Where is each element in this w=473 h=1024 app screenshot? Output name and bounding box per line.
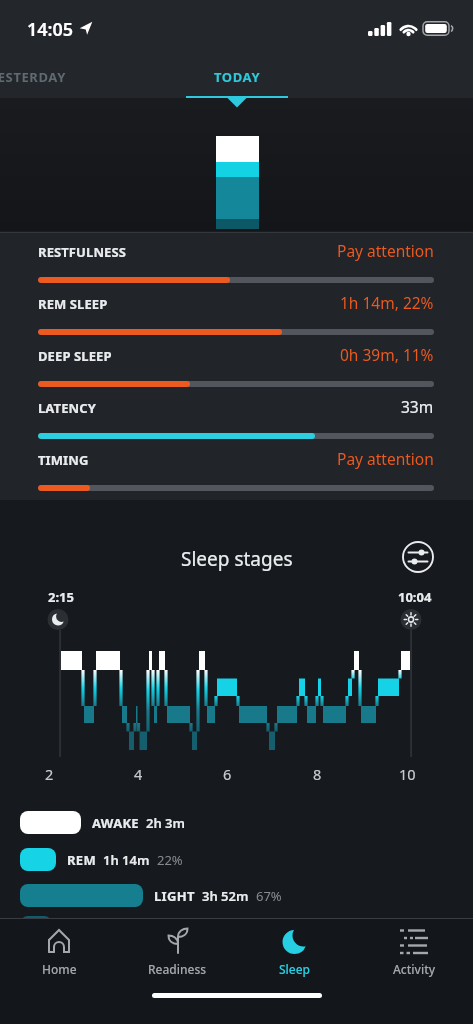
button[interactable]: Readiness [133, 924, 221, 982]
staticText: Sleep stages [181, 546, 293, 572]
staticText: Home [42, 961, 77, 977]
button[interactable]: DEEP [20, 916, 184, 939]
button[interactable]: Sleep [251, 924, 339, 982]
staticText: RESTFULNESS [38, 243, 126, 261]
staticText: 8 [313, 764, 322, 784]
staticText: LATENCY [38, 399, 96, 417]
button[interactable]: REM [20, 848, 183, 871]
button[interactable]: YESTERDAY [0, 62, 72, 92]
staticText: 11% [158, 919, 184, 937]
button[interactable]: RESTFULNESS [0, 235, 473, 287]
staticText: 33m [401, 396, 434, 417]
staticText: Pay attention [337, 240, 434, 261]
staticText: 2 [45, 764, 54, 784]
staticText: TODAY [214, 68, 261, 86]
staticText: 2h 3m [146, 814, 186, 832]
staticText: LIGHT [154, 887, 195, 905]
staticText: YESTERDAY [0, 68, 66, 86]
staticText: Sleep [279, 961, 311, 977]
staticText: 1h 14m, 22% [340, 292, 434, 313]
staticText: Readiness [148, 961, 207, 977]
staticText: 14:05 [27, 17, 74, 42]
button[interactable] [400, 539, 436, 575]
button[interactable]: LIGHT [20, 884, 282, 907]
button[interactable]: AWAKE [20, 811, 186, 834]
staticText: REM SLEEP [38, 295, 108, 313]
staticText: 6 [223, 764, 232, 784]
button[interactable]: LATENCY [0, 391, 473, 443]
button[interactable]: DEEP SLEEP [0, 339, 473, 391]
staticText: Pay attention [337, 448, 434, 469]
staticText: DEEP [63, 919, 97, 937]
staticText: AWAKE [92, 814, 139, 832]
staticText: 22% [157, 851, 183, 869]
button[interactable]: REM SLEEP [0, 287, 473, 339]
staticText: 67% [256, 887, 282, 905]
staticText: 3h 52m [202, 887, 249, 905]
staticText: 2:15 [48, 588, 74, 606]
button[interactable]: TODAY [186, 62, 288, 92]
staticText: REM [67, 851, 96, 869]
staticText: DEEP SLEEP [38, 347, 112, 365]
button[interactable]: Home [15, 924, 103, 982]
button[interactable]: TIMING [0, 443, 473, 495]
staticText: 10:04 [398, 588, 432, 606]
button[interactable]: Activity [370, 924, 458, 982]
staticText: 1h 14m [103, 851, 150, 869]
staticText: TIMING [38, 451, 89, 469]
staticText: 4 [134, 764, 143, 784]
staticText: 10 [399, 764, 416, 784]
staticText: 0h 39m, 11% [340, 344, 434, 365]
staticText: Activity [393, 961, 436, 977]
